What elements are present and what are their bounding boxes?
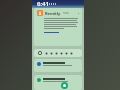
button[interactable]: Tile (70, 52, 73, 55)
button[interactable]: Tile (50, 52, 53, 55)
button[interactable]: Tile (65, 52, 68, 55)
button[interactable]: Record (61, 82, 68, 89)
staticText: Remitly (45, 11, 61, 16)
button[interactable]: Tile (55, 52, 58, 55)
staticText: now (63, 11, 69, 15)
button[interactable]: Tile (45, 52, 48, 55)
staticText: 6:41 (37, 0, 49, 7)
button[interactable]: Remitly (34, 8, 82, 46)
button[interactable]: Tile (60, 52, 63, 55)
button[interactable] (34, 59, 82, 72)
button[interactable]: Record (34, 75, 82, 90)
button[interactable]: Settings (38, 51, 42, 55)
